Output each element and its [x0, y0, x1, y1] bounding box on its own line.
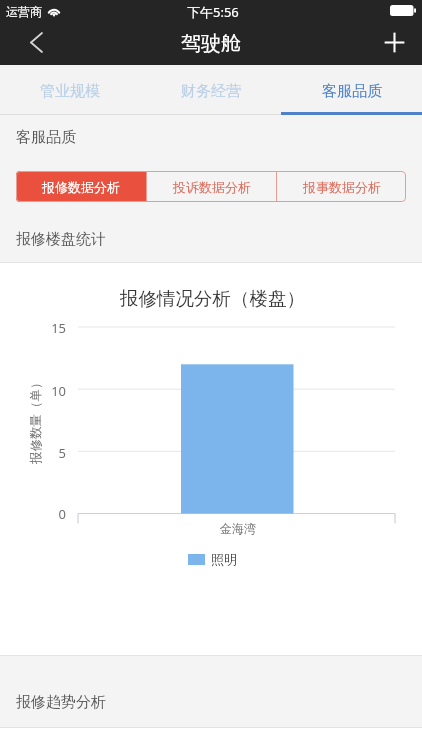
staticText: 财务经营: [181, 82, 241, 101]
staticText: 10: [0, 382, 66, 400]
staticText: 5: [0, 444, 66, 462]
staticText: 运营商: [6, 4, 42, 19]
staticText: 报事数据分析: [303, 179, 381, 195]
staticText: 报修数据分析: [42, 179, 120, 195]
staticText: 下午5:56: [187, 3, 239, 21]
staticText: 15: [0, 319, 66, 337]
staticText: 报修情况分析（楼盘）: [120, 287, 305, 310]
button[interactable]: 返回: [0, 24, 62, 65]
staticText: 客服品质: [322, 82, 382, 101]
button[interactable]: 报修数据分析: [16, 171, 146, 202]
button[interactable]: 客服品质: [281, 65, 422, 115]
button[interactable]: 添加: [366, 24, 422, 65]
button[interactable]: 报事数据分析: [277, 171, 406, 202]
staticText: 投诉数据分析: [173, 179, 251, 195]
staticText: 驾驶舱: [181, 31, 241, 56]
staticText: 金海湾: [220, 521, 256, 536]
button[interactable]: 投诉数据分析: [147, 171, 276, 202]
staticText: 客服品质: [16, 128, 76, 147]
staticText: 报修趋势分析: [16, 693, 106, 712]
button[interactable]: 财务经营: [140, 65, 281, 115]
staticText: 报修楼盘统计: [16, 230, 106, 249]
staticText: 照明: [211, 551, 237, 567]
staticText: 管业规模: [40, 82, 100, 101]
button[interactable]: 管业规模: [0, 65, 140, 115]
staticText: 报修数量（单）: [28, 376, 44, 464]
staticText: 0: [0, 505, 66, 523]
